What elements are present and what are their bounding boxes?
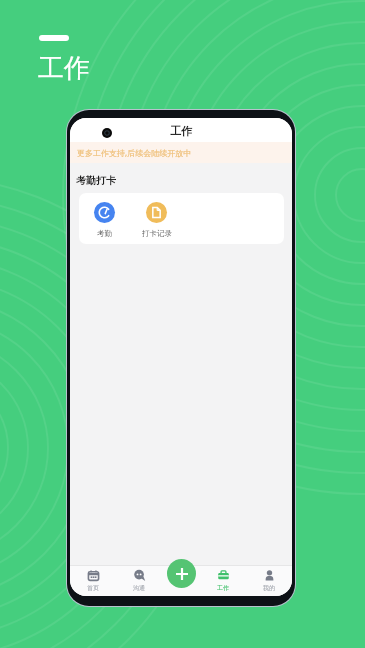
staticText: 我的 bbox=[263, 584, 275, 592]
staticText: 沟通 bbox=[133, 584, 145, 592]
button[interactable]: 工作 bbox=[200, 565, 246, 596]
staticText: 首页 bbox=[87, 584, 99, 592]
button[interactable]: 考勤 bbox=[89, 202, 120, 238]
staticText: 工作 bbox=[217, 584, 229, 592]
staticText: 考勤 bbox=[97, 229, 112, 238]
staticText: 考勤打卡 bbox=[76, 174, 116, 187]
button[interactable]: 首页 bbox=[70, 565, 116, 596]
button[interactable]: Add bbox=[167, 559, 196, 588]
staticText: 工作 bbox=[38, 52, 90, 85]
button[interactable]: 打卡记录 bbox=[141, 202, 172, 238]
button[interactable]: 我的 bbox=[246, 565, 292, 596]
staticText: 工作 bbox=[170, 124, 192, 138]
other: Camera bbox=[102, 128, 112, 138]
button[interactable]: 更多工作支持,后续会陆续开放中 bbox=[70, 142, 292, 163]
button[interactable]: 沟通 bbox=[116, 565, 162, 596]
staticText: 打卡记录 bbox=[142, 229, 172, 238]
staticText: 更多工作支持,后续会陆续开放中 bbox=[77, 147, 192, 158]
